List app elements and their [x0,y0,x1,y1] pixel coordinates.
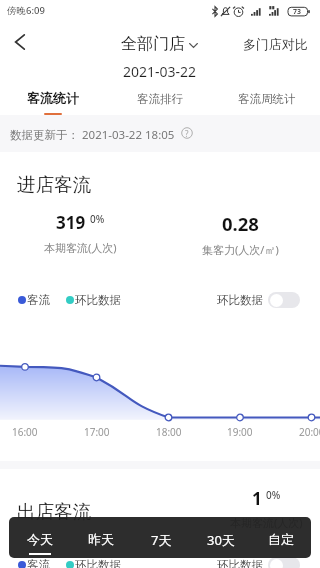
button[interactable]: 全部门店 [121,34,198,54]
button[interactable]: 昨天 [70,517,131,558]
staticText: 73 [293,7,302,17]
staticText: 全部门店 [121,34,185,54]
button[interactable]: 客流周统计 [213,86,320,116]
staticText: 环比数据 [217,558,263,568]
button[interactable]: 环比数据 [217,555,300,568]
staticText: 0.28 [222,211,259,236]
staticText: 客流周统计 [238,92,296,106]
staticText: 傍晚6:09 [7,4,45,17]
staticText: 环比数据 [75,293,121,307]
staticText: 客流统计 [27,90,79,106]
button[interactable]: 自定 [251,517,311,558]
staticText: 2021-03-22 [123,62,197,81]
staticText: 7天 [151,531,172,549]
staticText: 出店客流 [17,500,91,523]
staticText: 19:00 [227,425,253,439]
staticText: 1 [252,487,262,510]
button[interactable]: Back [6,28,34,56]
staticText: 集客力(人次/㎡) [202,242,279,257]
staticText: 30天 [207,531,235,549]
button[interactable]: 今天 [9,517,70,558]
button[interactable]: 多门店对比 [243,36,308,52]
staticText: 昨天 [88,531,114,547]
staticText: 17:00 [84,425,110,439]
button[interactable]: 客流统计 [0,86,106,116]
staticText: 本期客流(人次) [230,515,303,530]
staticText: 18:00 [156,425,182,439]
button[interactable]: 7天 [131,517,191,558]
staticText: 0% [90,212,105,226]
staticText: 20:00 [299,425,320,439]
staticText: 319 [56,211,86,234]
button[interactable]: 客流排行 [106,86,213,116]
staticText: 数据更新于： 2021-03-22 18:05 [10,127,175,143]
staticText: 环比数据 [217,293,263,307]
staticText: 0% [266,488,281,502]
staticText: 客流 [27,293,50,307]
staticText: 客流排行 [137,92,183,106]
button[interactable]: 30天 [191,517,251,558]
staticText: 进店客流 [17,173,91,196]
staticText: 16:00 [12,425,38,439]
staticText: 自定 [268,531,294,547]
button[interactable]: Help [180,126,194,140]
staticText: 本期客流(人次) [44,240,117,255]
button[interactable]: 环比数据 [217,290,300,309]
staticText: 环比数据 [75,558,121,568]
staticText: ? [185,128,189,139]
staticText: 今天 [27,531,53,547]
staticText: 客流 [27,558,50,568]
